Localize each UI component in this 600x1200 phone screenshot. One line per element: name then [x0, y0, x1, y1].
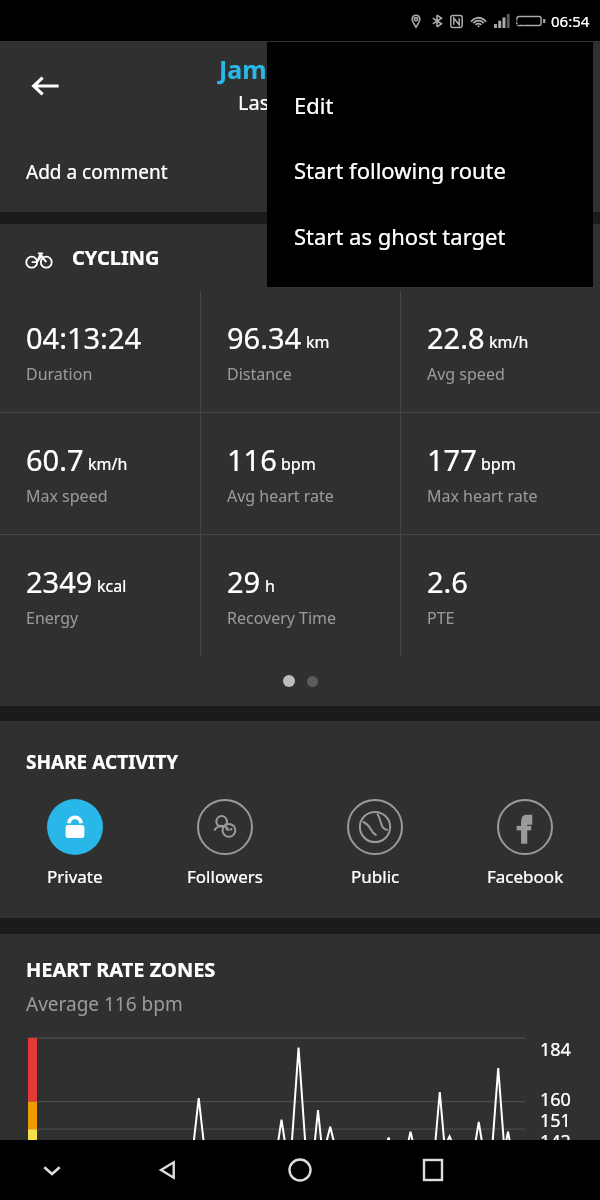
staticText: 2.6	[427, 562, 468, 601]
staticText: Avg heart rate	[227, 485, 334, 507]
staticText: Duration	[26, 363, 93, 385]
staticText: km	[306, 331, 330, 353]
button[interactable]: 96.34	[201, 291, 400, 412]
staticText: 142	[540, 1129, 571, 1154]
button[interactable]: Facebook	[450, 795, 600, 892]
staticText: 177	[427, 440, 477, 479]
staticText: SHARE ACTIVITY	[26, 749, 179, 775]
staticText: Max heart rate	[427, 485, 538, 507]
button[interactable]: 2.6	[401, 535, 600, 656]
button[interactable]: Add a comment	[0, 132, 600, 212]
staticText: 22.8	[427, 318, 485, 357]
button[interactable]: Back	[145, 1140, 189, 1200]
staticText: 160	[540, 1087, 571, 1112]
button[interactable]: Private	[0, 795, 150, 892]
staticText: Last Week	[238, 89, 334, 116]
button[interactable]: Home	[278, 1140, 322, 1200]
staticText: Facebook	[487, 865, 564, 888]
button[interactable]: 04:13:24	[0, 291, 200, 412]
staticText: HEART RATE ZONES	[26, 956, 216, 983]
staticText: bpm	[481, 453, 516, 475]
staticText: Average 116 bpm	[26, 991, 183, 1017]
button[interactable]: Public	[300, 795, 450, 892]
staticText: 04:13:24	[26, 318, 142, 357]
staticText: Recovery Time	[227, 607, 337, 629]
staticText: 184	[540, 1037, 571, 1062]
staticText: Avg speed	[427, 363, 505, 385]
staticText: James Smyth	[219, 52, 381, 86]
staticText: Add a comment	[26, 159, 168, 185]
button[interactable]: 2349	[0, 535, 200, 656]
staticText: 116	[227, 440, 277, 479]
button[interactable]: Followers	[150, 795, 300, 892]
staticText: 60.7	[26, 440, 84, 479]
button[interactable]: Back	[20, 60, 72, 112]
staticText: 151	[540, 1108, 571, 1133]
staticText: 06:54	[551, 11, 590, 31]
button[interactable]: Start following route	[267, 153, 593, 186]
button[interactable]: 29	[201, 535, 400, 656]
staticText: PTE	[427, 607, 455, 629]
staticText: Start following route	[294, 155, 506, 185]
staticText: Energy	[26, 607, 79, 629]
staticText: 96.34	[227, 318, 302, 357]
button[interactable]: Recents	[411, 1140, 455, 1200]
button[interactable]: Hide keyboard	[30, 1140, 74, 1200]
staticText: kcal	[97, 575, 127, 597]
staticText: bpm	[281, 453, 316, 475]
button[interactable]: Start as ghost target	[267, 219, 593, 252]
staticText: Distance	[227, 363, 292, 385]
staticText: CYCLING	[72, 244, 160, 271]
button[interactable]: 22.8	[401, 291, 600, 412]
button[interactable]: 60.7	[0, 413, 200, 534]
staticText: Edit	[294, 90, 334, 120]
staticText: km/h	[88, 453, 128, 475]
staticText: h	[265, 575, 275, 597]
button[interactable]: Edit	[267, 88, 593, 121]
staticText: 29	[227, 562, 261, 601]
staticText: 2349	[26, 562, 93, 601]
staticText: km/h	[489, 331, 529, 353]
button[interactable]: 177	[401, 413, 600, 534]
staticText: Start as ghost target	[294, 221, 506, 251]
button[interactable]: 116	[201, 413, 400, 534]
staticText: Max speed	[26, 485, 108, 507]
staticText: Public	[351, 865, 400, 888]
staticText: 91	[516, 15, 527, 27]
staticText: Followers	[187, 865, 263, 888]
staticText: Private	[47, 865, 103, 888]
